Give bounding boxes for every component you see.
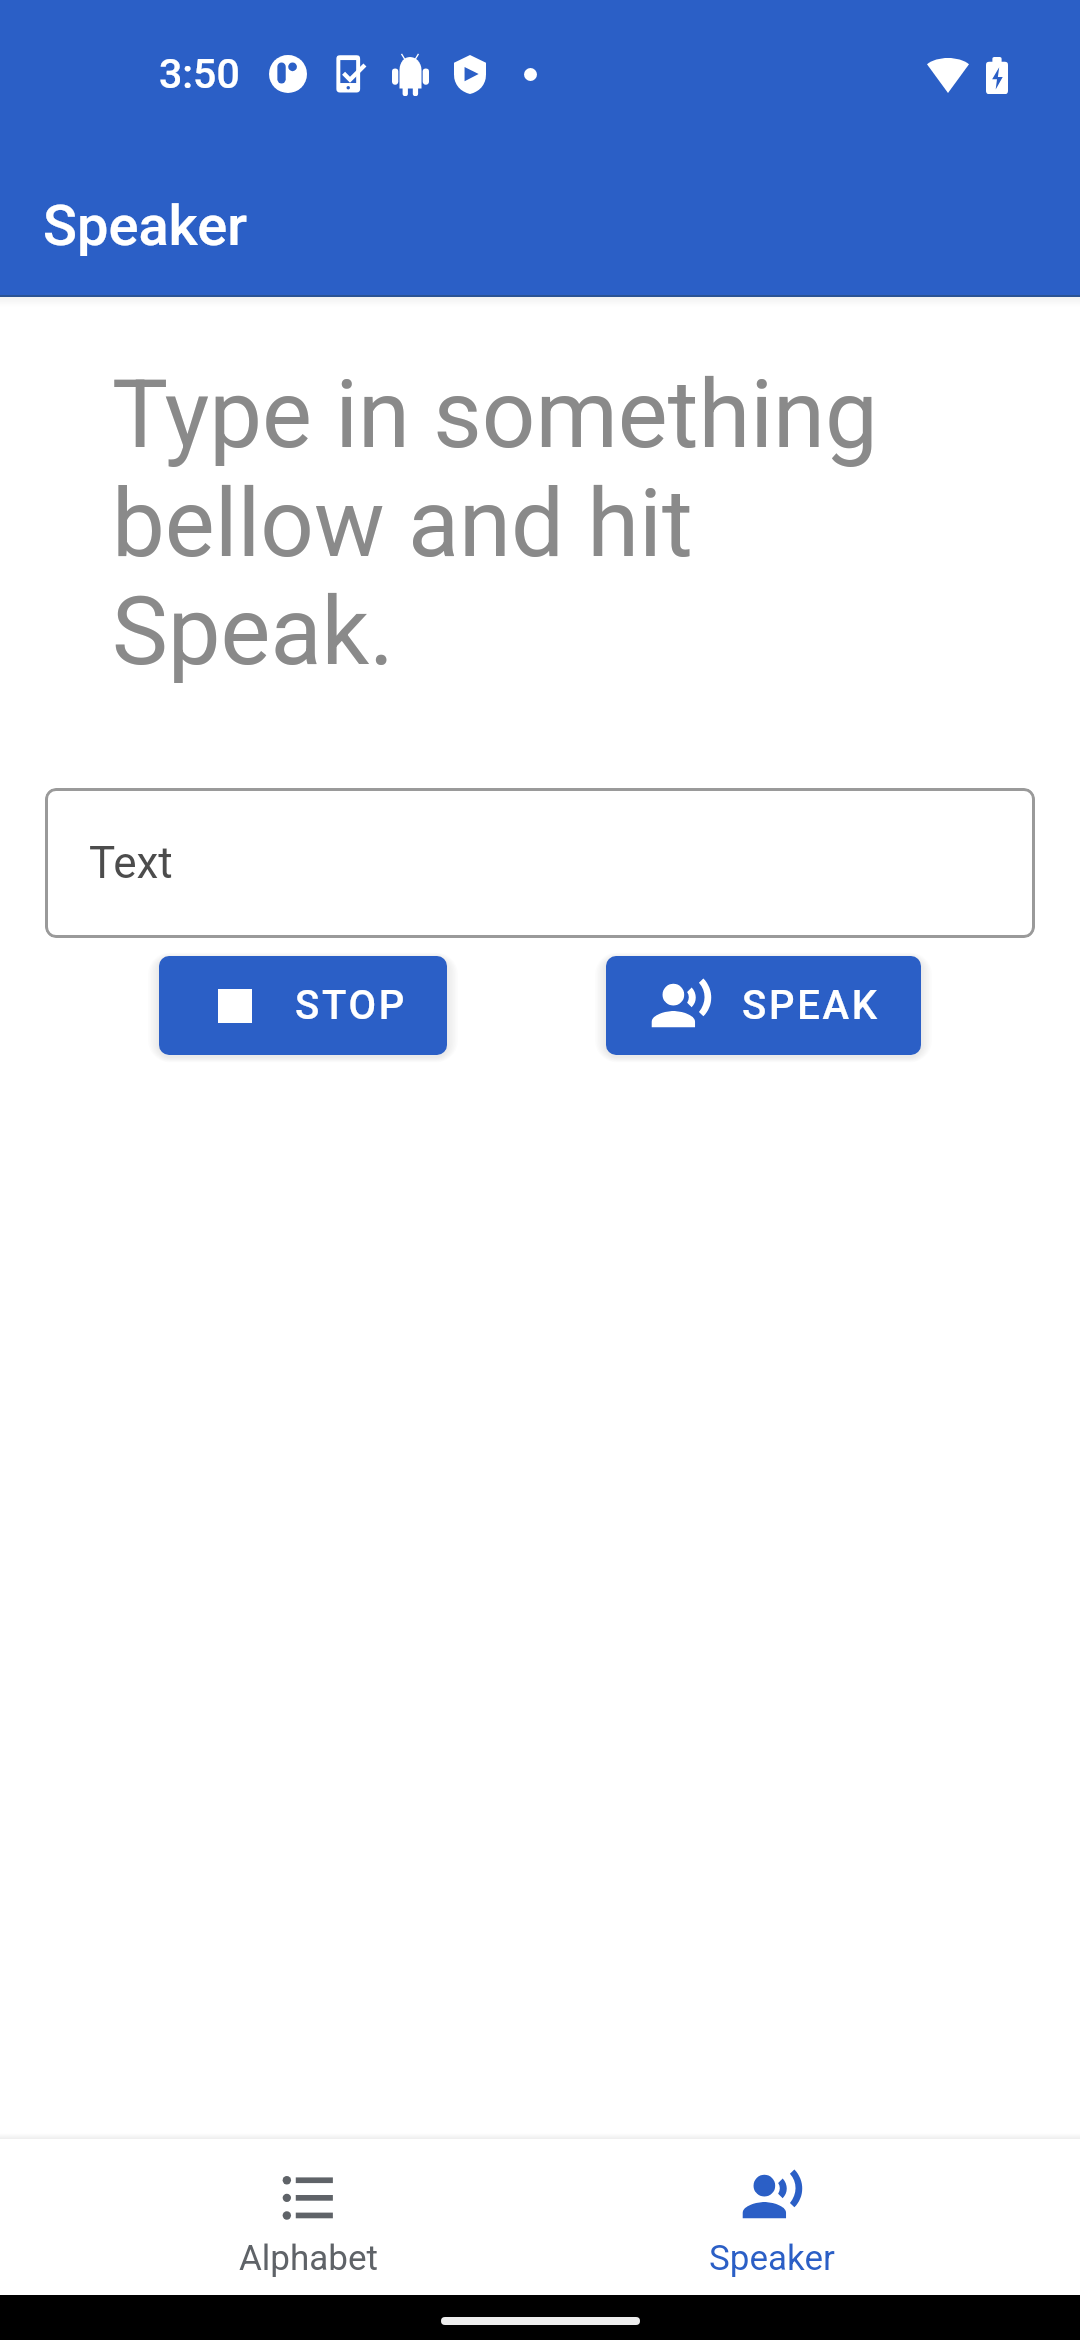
staticText: Text xyxy=(89,837,173,889)
button[interactable]: SPEAK xyxy=(606,956,921,1055)
staticText: Type in something bellow and hit Speak. xyxy=(112,360,902,686)
button[interactable]: Text input field xyxy=(45,788,1035,938)
staticText: Speaker xyxy=(43,193,248,259)
staticText: Alphabet xyxy=(239,2238,378,2279)
staticText: SPEAK xyxy=(742,982,880,1029)
staticText: STOP xyxy=(295,982,407,1029)
button[interactable]: Alphabet xyxy=(76,2139,540,2295)
button[interactable]: Speaker xyxy=(540,2139,1004,2295)
staticText: 3:50 xyxy=(159,50,240,98)
button[interactable]: STOP xyxy=(159,956,447,1055)
staticText: Speaker xyxy=(709,2238,835,2279)
